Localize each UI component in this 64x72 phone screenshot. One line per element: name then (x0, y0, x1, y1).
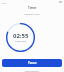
staticText: Session 2 of 4 (24, 12, 40, 15)
staticText: Focus time (15, 40, 27, 43)
staticText: Skip session (25, 69, 39, 72)
staticText: Pause (28, 61, 37, 65)
staticText: 9:41 (2, 1, 7, 4)
staticText: Timer (28, 6, 37, 10)
button[interactable]: Skip session (0, 68, 64, 72)
staticText: 02:55 (13, 32, 29, 40)
button[interactable]: Pause (2, 59, 62, 67)
